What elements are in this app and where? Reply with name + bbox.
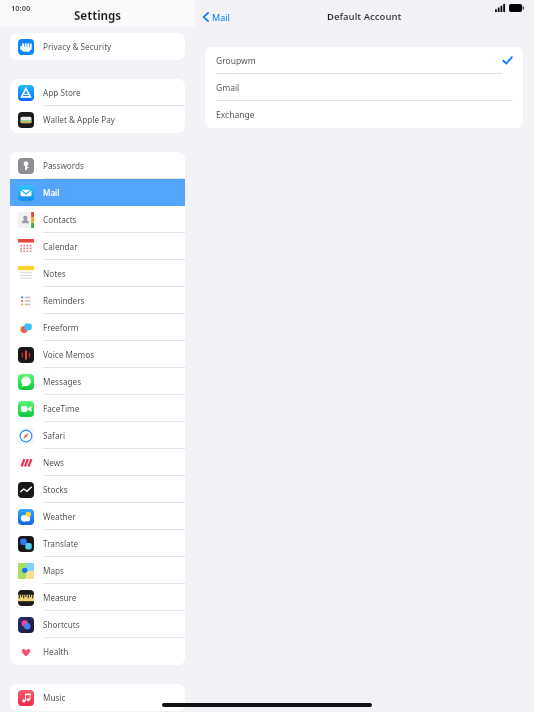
button[interactable]: Maps xyxy=(10,557,185,584)
staticText: Voice Memos xyxy=(43,349,95,360)
staticText: Stocks xyxy=(43,484,68,495)
button[interactable]: Health xyxy=(10,638,185,665)
button[interactable]: Freeform xyxy=(10,314,185,341)
staticText: Passwords xyxy=(43,160,84,171)
staticText: Maps xyxy=(43,565,64,576)
staticText: Notes xyxy=(43,268,66,279)
button[interactable]: Voice Memos xyxy=(10,341,185,368)
staticText: Wallet & Apple Pay xyxy=(43,114,115,125)
staticText: Settings xyxy=(74,8,122,24)
staticText: Privacy & Security xyxy=(43,41,112,52)
button[interactable]: Shortcuts xyxy=(10,611,185,638)
button[interactable]: Exchange xyxy=(205,101,523,128)
staticText: Translate xyxy=(43,538,79,549)
button[interactable]: Weather xyxy=(10,503,185,530)
button[interactable]: Wallet & Apple Pay xyxy=(10,106,185,133)
staticText: Safari xyxy=(43,430,65,441)
button[interactable]: Reminders xyxy=(10,287,185,314)
button[interactable]: Stocks xyxy=(10,476,185,503)
staticText: Music xyxy=(43,692,66,703)
button[interactable]: Calendar xyxy=(10,233,185,260)
staticText: Groupwm xyxy=(216,55,256,67)
staticText: Measure xyxy=(43,592,77,603)
staticText: News xyxy=(43,457,65,468)
staticText: Default Account xyxy=(327,10,402,23)
button[interactable]: Messages xyxy=(10,368,185,395)
staticText: Calendar xyxy=(43,241,78,252)
staticText: 10:00 xyxy=(11,3,31,13)
staticText: Reminders xyxy=(43,295,85,306)
staticText: Freeform xyxy=(43,322,79,333)
button[interactable]: Safari xyxy=(10,422,185,449)
staticText: Gmail xyxy=(216,82,240,94)
staticText: Health xyxy=(43,646,69,657)
staticText: FaceTime xyxy=(43,403,80,414)
button[interactable]: FaceTime xyxy=(10,395,185,422)
button[interactable]: Music xyxy=(10,684,185,711)
button[interactable]: Passwords xyxy=(10,152,185,179)
button[interactable]: Notes xyxy=(10,260,185,287)
button[interactable]: Mail xyxy=(200,9,233,25)
button[interactable]: News xyxy=(10,449,185,476)
staticText: Mail xyxy=(43,187,60,198)
staticText: Exchange xyxy=(216,109,255,121)
button[interactable]: Groupwm xyxy=(205,47,523,74)
button[interactable]: Translate xyxy=(10,530,185,557)
staticText: App Store xyxy=(43,87,81,98)
staticText: Shortcuts xyxy=(43,619,80,630)
staticText: Mail xyxy=(212,11,230,23)
button[interactable]: Measure xyxy=(10,584,185,611)
button[interactable]: Contacts xyxy=(10,206,185,233)
staticText: Messages xyxy=(43,376,82,387)
button[interactable]: App Store xyxy=(10,79,185,106)
button[interactable]: Gmail xyxy=(205,74,523,101)
button[interactable]: Privacy & Security xyxy=(10,33,185,60)
button[interactable]: Mail xyxy=(10,179,185,206)
staticText: Weather xyxy=(43,511,76,522)
staticText: Contacts xyxy=(43,214,77,225)
